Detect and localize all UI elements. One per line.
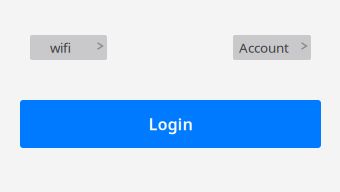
staticText: wifi xyxy=(50,39,71,56)
button[interactable]: wifi xyxy=(30,35,107,60)
staticText: Account xyxy=(239,39,289,56)
staticText: Login xyxy=(148,113,192,135)
button[interactable]: Account xyxy=(233,35,311,60)
button[interactable]: Login xyxy=(20,100,321,148)
